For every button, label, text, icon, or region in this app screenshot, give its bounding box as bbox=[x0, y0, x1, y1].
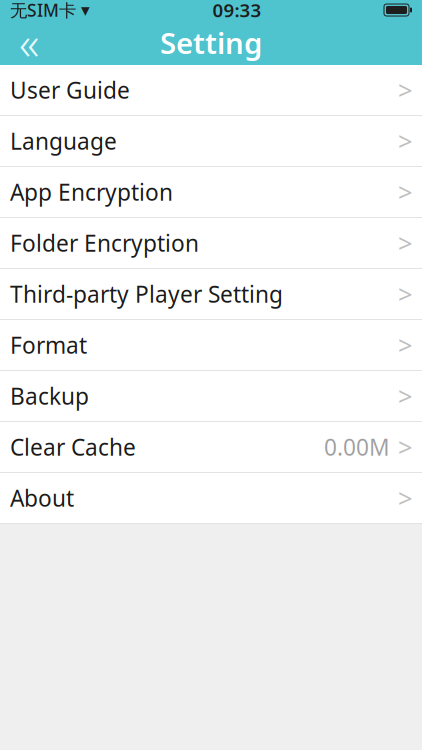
button[interactable]: Backup bbox=[0, 371, 422, 422]
button[interactable]: Back bbox=[0, 20, 58, 64]
staticText: > bbox=[398, 226, 412, 260]
staticText: ▾ bbox=[81, 0, 90, 20]
staticText: > bbox=[398, 124, 412, 158]
staticText: Language bbox=[10, 126, 117, 156]
staticText: 09:33 bbox=[212, 0, 261, 22]
button[interactable]: Format bbox=[0, 320, 422, 371]
button[interactable]: About bbox=[0, 473, 422, 524]
staticText: App Encryption bbox=[10, 177, 173, 207]
staticText: > bbox=[398, 481, 412, 515]
staticText: > bbox=[398, 430, 412, 464]
button[interactable]: Language bbox=[0, 116, 422, 167]
staticText: Format bbox=[10, 330, 87, 360]
staticText: 0.00M bbox=[324, 432, 390, 462]
staticText: « bbox=[19, 12, 39, 73]
button[interactable]: Third-party Player Setting bbox=[0, 269, 422, 320]
staticText: > bbox=[398, 328, 412, 362]
staticText: Backup bbox=[10, 381, 89, 411]
staticText: Setting bbox=[160, 23, 262, 62]
button[interactable]: Clear Cache bbox=[0, 422, 422, 473]
staticText: > bbox=[398, 379, 412, 413]
staticText: Clear Cache bbox=[10, 432, 136, 462]
staticText: About bbox=[10, 483, 74, 513]
button[interactable]: App Encryption bbox=[0, 167, 422, 218]
staticText: > bbox=[398, 277, 412, 311]
staticText: Third-party Player Setting bbox=[10, 279, 283, 309]
staticText: > bbox=[398, 73, 412, 107]
button[interactable]: Folder Encryption bbox=[0, 218, 422, 269]
staticText: User Guide bbox=[10, 75, 130, 105]
staticText: 无SIM卡 bbox=[10, 0, 76, 21]
staticText: > bbox=[398, 175, 412, 209]
button[interactable]: User Guide bbox=[0, 65, 422, 116]
staticText: Folder Encryption bbox=[10, 228, 199, 258]
